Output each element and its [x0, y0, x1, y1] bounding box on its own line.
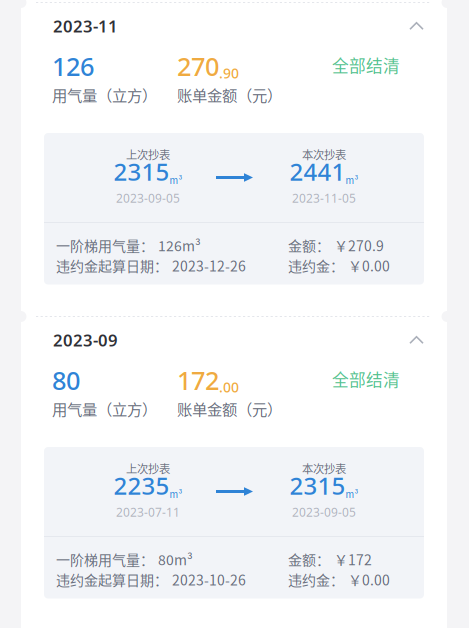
staticText: 2315 — [289, 469, 345, 502]
staticText: 2023-09 — [53, 329, 118, 351]
staticText: 2023-07-11 — [116, 504, 180, 520]
staticText: m³ — [169, 173, 182, 187]
staticText: 本次抄表 — [302, 146, 346, 162]
staticText: 全部结清 — [332, 53, 400, 77]
staticText: 用气量（立方） — [52, 83, 157, 106]
staticText: 本次抄表 — [302, 460, 346, 476]
staticText: 金额： — [288, 549, 330, 569]
staticText: ￥0.00 — [348, 569, 390, 590]
staticText: 126m³ — [158, 235, 201, 255]
staticText: 上次抄表 — [126, 460, 170, 476]
staticText: 上次抄表 — [126, 146, 170, 162]
button[interactable]: 2023-09 — [21, 327, 447, 353]
staticText: 172 — [177, 363, 219, 397]
staticText: 违约金： — [288, 255, 344, 276]
staticText: .00 — [219, 377, 239, 396]
staticText: 2235 — [113, 469, 169, 502]
staticText: 270 — [177, 49, 219, 83]
staticText: 违约金起算日期： — [56, 569, 168, 590]
staticText: m³ — [169, 487, 182, 501]
staticText: 2023-09-05 — [116, 190, 180, 206]
staticText: 2023-09-05 — [292, 504, 356, 520]
staticText: 用气量（立方） — [52, 397, 157, 420]
staticText: 2441 — [289, 155, 345, 188]
staticText: 80 — [52, 363, 80, 397]
staticText: 一阶梯用气量： — [56, 235, 154, 255]
staticText: 2023-11 — [53, 15, 118, 37]
staticText: 2315 — [113, 155, 169, 188]
staticText: 80m³ — [158, 549, 193, 569]
staticText: 违约金起算日期： — [56, 255, 168, 276]
staticText: m³ — [345, 487, 358, 501]
staticText: 2023-10-26 — [172, 569, 246, 590]
staticText: .90 — [219, 63, 239, 82]
staticText: 一阶梯用气量： — [56, 549, 154, 569]
staticText: 账单金额（元） — [177, 83, 282, 106]
staticText: m³ — [345, 173, 358, 187]
staticText: ￥172 — [334, 549, 372, 569]
staticText: ￥0.00 — [348, 255, 390, 276]
staticText: 2023-11-05 — [292, 190, 356, 206]
staticText: 违约金： — [288, 569, 344, 590]
button[interactable]: 2023-11 — [21, 13, 447, 39]
staticText: ￥270.9 — [334, 235, 384, 255]
staticText: 2023-12-26 — [172, 255, 246, 276]
staticText: 126 — [52, 49, 94, 83]
staticText: 全部结清 — [332, 367, 400, 391]
staticText: 账单金额（元） — [177, 397, 282, 420]
staticText: 金额： — [288, 235, 330, 255]
